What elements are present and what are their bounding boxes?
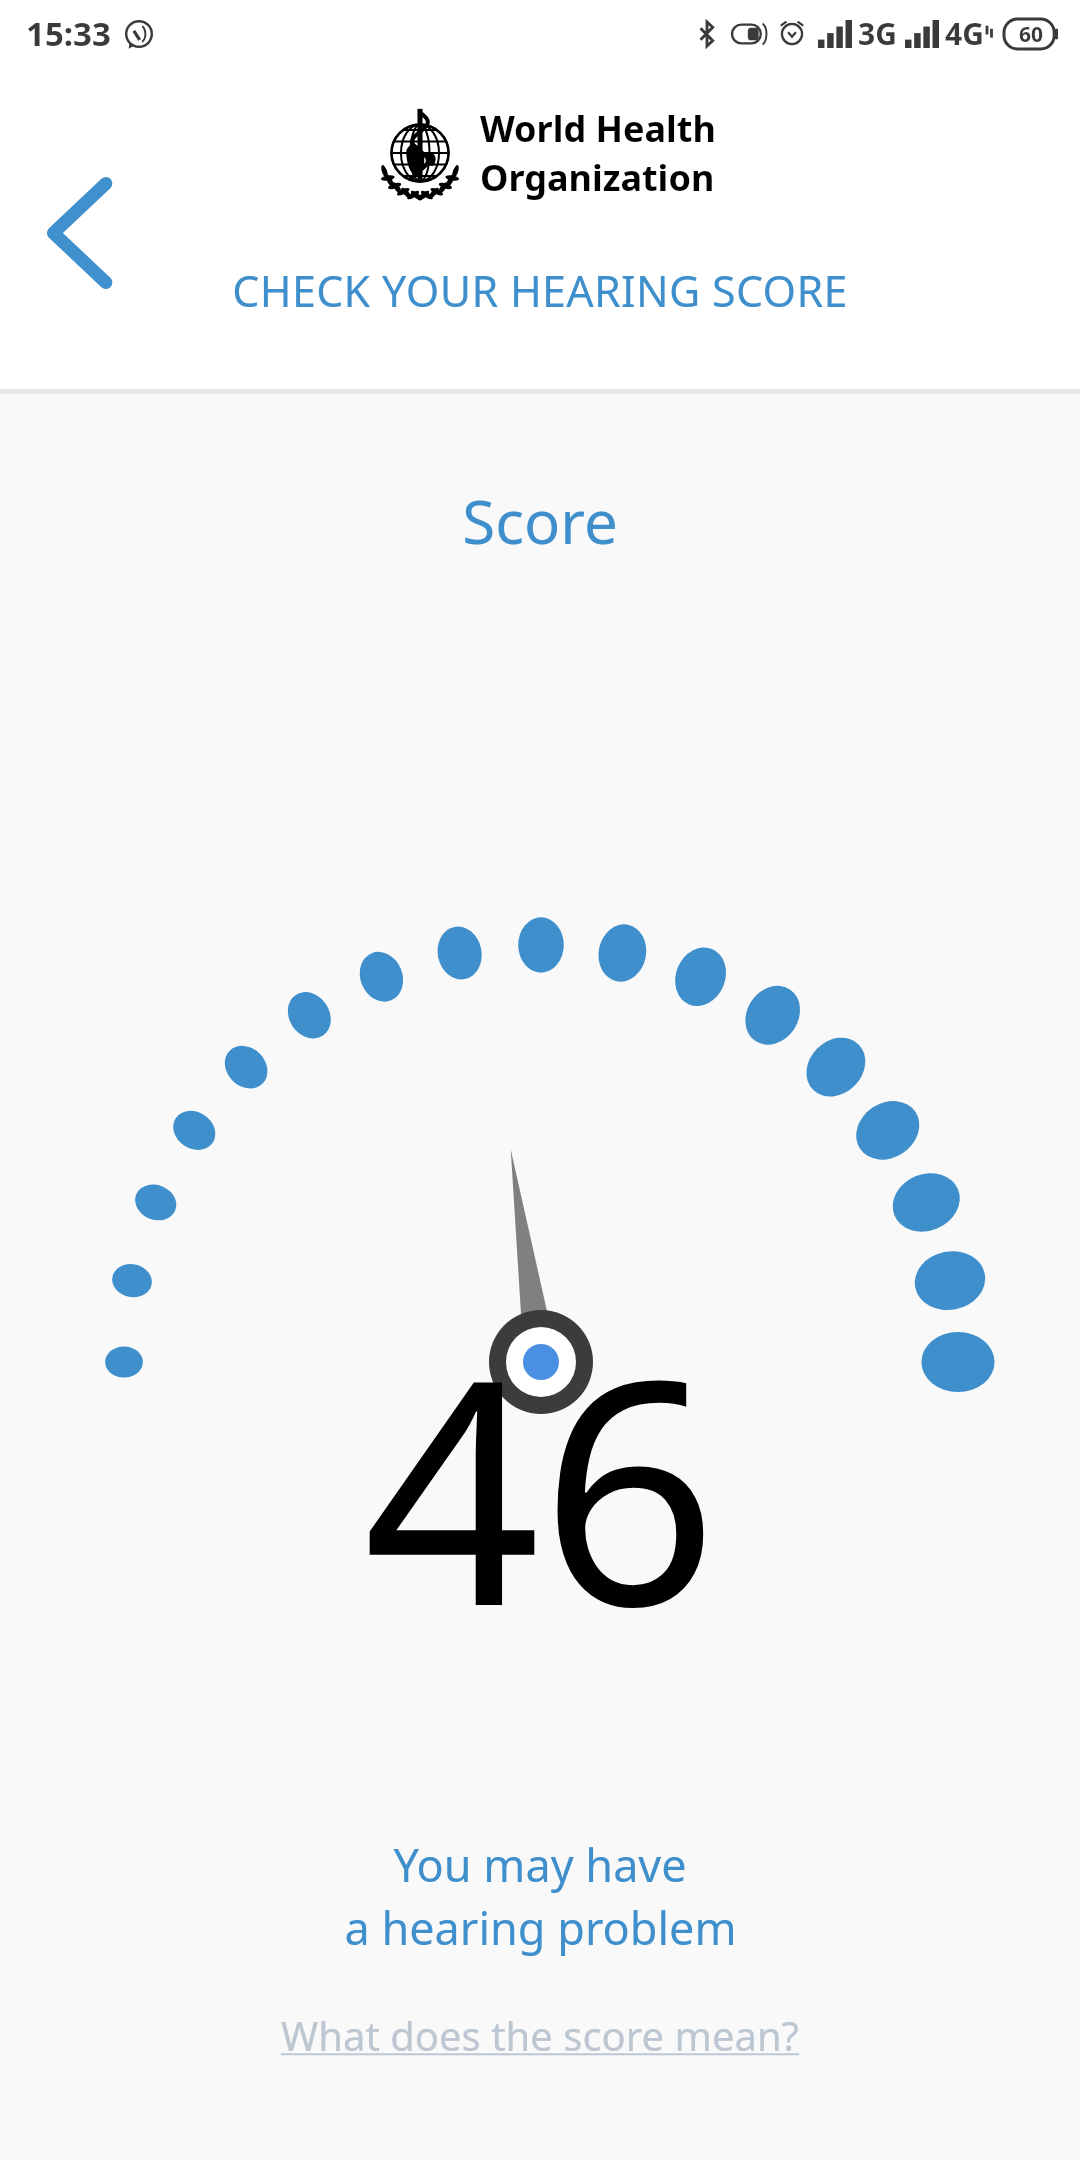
button[interactable]: You may have <box>0 1834 1080 1958</box>
button[interactable]: Back <box>24 158 134 308</box>
staticText: World Health <box>480 104 716 153</box>
button[interactable]: CHECK YOUR HEARING SCORE <box>0 252 1080 328</box>
staticText: What does the score mean? <box>281 2008 799 2062</box>
staticText: 15:33 <box>26 11 111 56</box>
staticText: 4G <box>945 13 984 54</box>
staticText: 46 <box>363 1274 718 1696</box>
staticText: Score <box>462 480 618 562</box>
staticText: a hearing problem <box>344 1897 737 1958</box>
staticText: CHECK YOUR HEARING SCORE <box>232 261 848 320</box>
button[interactable]: What does the score mean? <box>269 2002 811 2068</box>
staticText: You may have <box>393 1834 687 1895</box>
staticText: 3G <box>858 13 897 54</box>
staticText: Organization <box>480 153 715 202</box>
staticText: 60 <box>1019 20 1044 49</box>
